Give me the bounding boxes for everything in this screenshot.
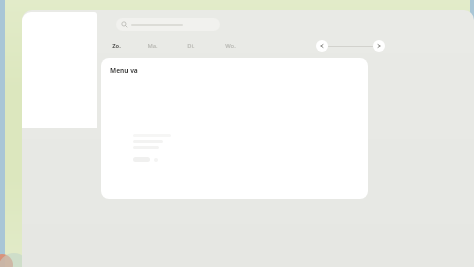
staticText: Ma.	[147, 42, 158, 50]
button[interactable]: Previous	[316, 40, 328, 52]
staticText: Wo.	[225, 42, 236, 50]
staticText: Di.	[187, 42, 195, 50]
button[interactable]: Zo.	[110, 40, 123, 52]
button[interactable]: Menu va	[101, 58, 368, 199]
button[interactable]: Wo.	[223, 40, 238, 52]
staticText: Zo.	[112, 42, 121, 50]
button[interactable]: Ma.	[145, 40, 160, 52]
button[interactable]: Di.	[185, 40, 197, 52]
staticText: Menu va	[110, 66, 138, 75]
button[interactable]: Search	[116, 18, 220, 31]
button[interactable]: Next	[373, 40, 385, 52]
